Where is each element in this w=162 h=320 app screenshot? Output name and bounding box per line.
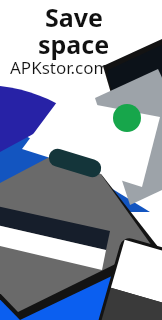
button[interactable] — [0, 0, 162, 320]
